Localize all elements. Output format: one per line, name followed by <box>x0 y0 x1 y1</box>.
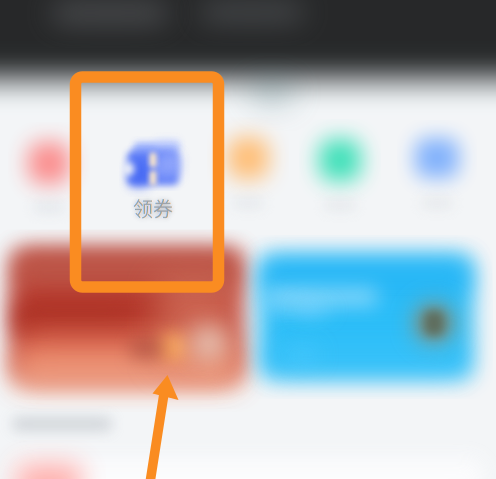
button[interactable] <box>391 128 483 219</box>
button[interactable] <box>294 130 386 221</box>
button[interactable] <box>202 128 294 219</box>
button[interactable]: 领券 <box>107 136 199 224</box>
staticText: 领券 <box>133 193 173 222</box>
button[interactable] <box>248 243 484 391</box>
button[interactable] <box>3 133 95 223</box>
button[interactable] <box>1 238 253 392</box>
